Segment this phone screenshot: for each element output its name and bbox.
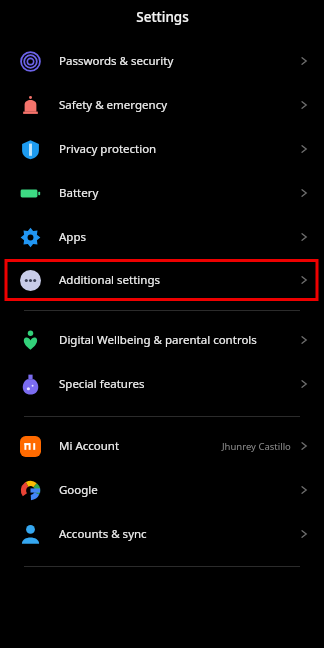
staticText: Jhunrey Castillo [222,440,291,453]
staticText: Google [59,482,98,498]
staticText: Additional settings [59,272,161,288]
button[interactable]: Privacy protection [0,127,324,171]
button[interactable]: Mi Account [0,424,324,468]
button[interactable]: Apps [0,215,324,259]
button[interactable]: Passwords & security [0,39,324,83]
button[interactable]: Digital Wellbeing & parental controls [0,318,324,362]
staticText: Digital Wellbeing & parental controls [59,332,257,348]
button[interactable]: Additional settings [0,259,324,301]
button[interactable]: Battery [0,171,324,215]
button[interactable]: Accounts & sync [0,512,324,556]
staticText: Passwords & security [59,53,174,69]
staticText: Battery [59,185,99,201]
staticText: Apps [59,229,87,245]
staticText: Mi Account [59,438,120,454]
staticText: Accounts & sync [59,526,147,542]
staticText: Settings [136,8,189,26]
button[interactable]: Special features [0,362,324,406]
staticText: Special features [59,376,145,392]
staticText: Privacy protection [59,141,157,157]
button[interactable]: Safety & emergency [0,83,324,127]
button[interactable]: Google [0,468,324,512]
staticText: Safety & emergency [59,97,168,113]
